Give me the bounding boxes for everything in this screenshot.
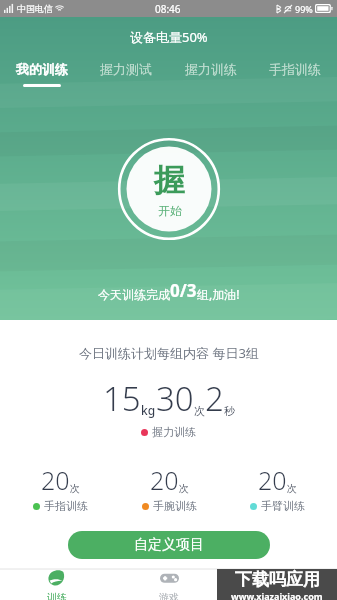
staticText: 自定义项目: [134, 536, 204, 554]
staticText: 组,加油!: [197, 286, 240, 302]
button[interactable]: 我的训练: [12, 58, 72, 90]
staticText: 游戏: [159, 591, 179, 600]
button[interactable]: 握: [118, 138, 220, 240]
staticText: 手臂训练: [261, 499, 305, 513]
button[interactable]: 手指训练: [265, 58, 325, 90]
button[interactable]: 20: [223, 463, 331, 513]
staticText: 30: [156, 376, 194, 421]
staticText: 次: [70, 482, 80, 495]
staticText: 开始: [158, 203, 182, 218]
staticText: 手腕训练: [153, 499, 197, 513]
button[interactable]: 20: [6, 463, 115, 513]
staticText: 0/3: [170, 279, 197, 302]
staticText: 握: [154, 161, 185, 200]
staticText: 15: [103, 376, 141, 421]
staticText: 次: [194, 404, 205, 418]
button[interactable]: 游戏: [113, 569, 225, 600]
button[interactable]: 训练: [0, 569, 113, 600]
staticText: 20: [150, 463, 179, 497]
button[interactable]: 握力测试: [96, 58, 156, 90]
staticText: 今日训练计划每组内容 每日3组: [79, 344, 259, 362]
staticText: 20: [41, 463, 70, 497]
button[interactable]: 握力训练: [181, 58, 241, 90]
staticText: 20: [258, 463, 287, 497]
staticText: 下载吗应用: [235, 569, 320, 590]
staticText: 秒: [224, 404, 235, 418]
staticText: 2: [205, 376, 224, 421]
staticText: 08:46: [155, 2, 181, 16]
staticText: 握力测试: [100, 61, 152, 77]
staticText: 次: [287, 482, 297, 495]
staticText: 训练: [47, 591, 67, 600]
staticText: 手指训练: [269, 61, 321, 77]
staticText: kg: [141, 402, 156, 418]
staticText: 手指训练: [44, 499, 88, 513]
button[interactable]: 自定义项目: [68, 531, 270, 559]
staticText: 设备电量50%: [130, 28, 208, 46]
staticText: 握力训练: [185, 61, 237, 77]
staticText: 握力训练: [152, 425, 196, 439]
staticText: 99%: [295, 3, 313, 15]
staticText: 我的训练: [16, 61, 68, 77]
staticText: 次: [179, 482, 189, 495]
staticText: 今天训练完成: [98, 287, 170, 302]
staticText: www.xiazaixiao.com: [231, 590, 323, 600]
button[interactable]: 20: [115, 463, 223, 513]
staticText: 中国电信: [17, 3, 53, 14]
